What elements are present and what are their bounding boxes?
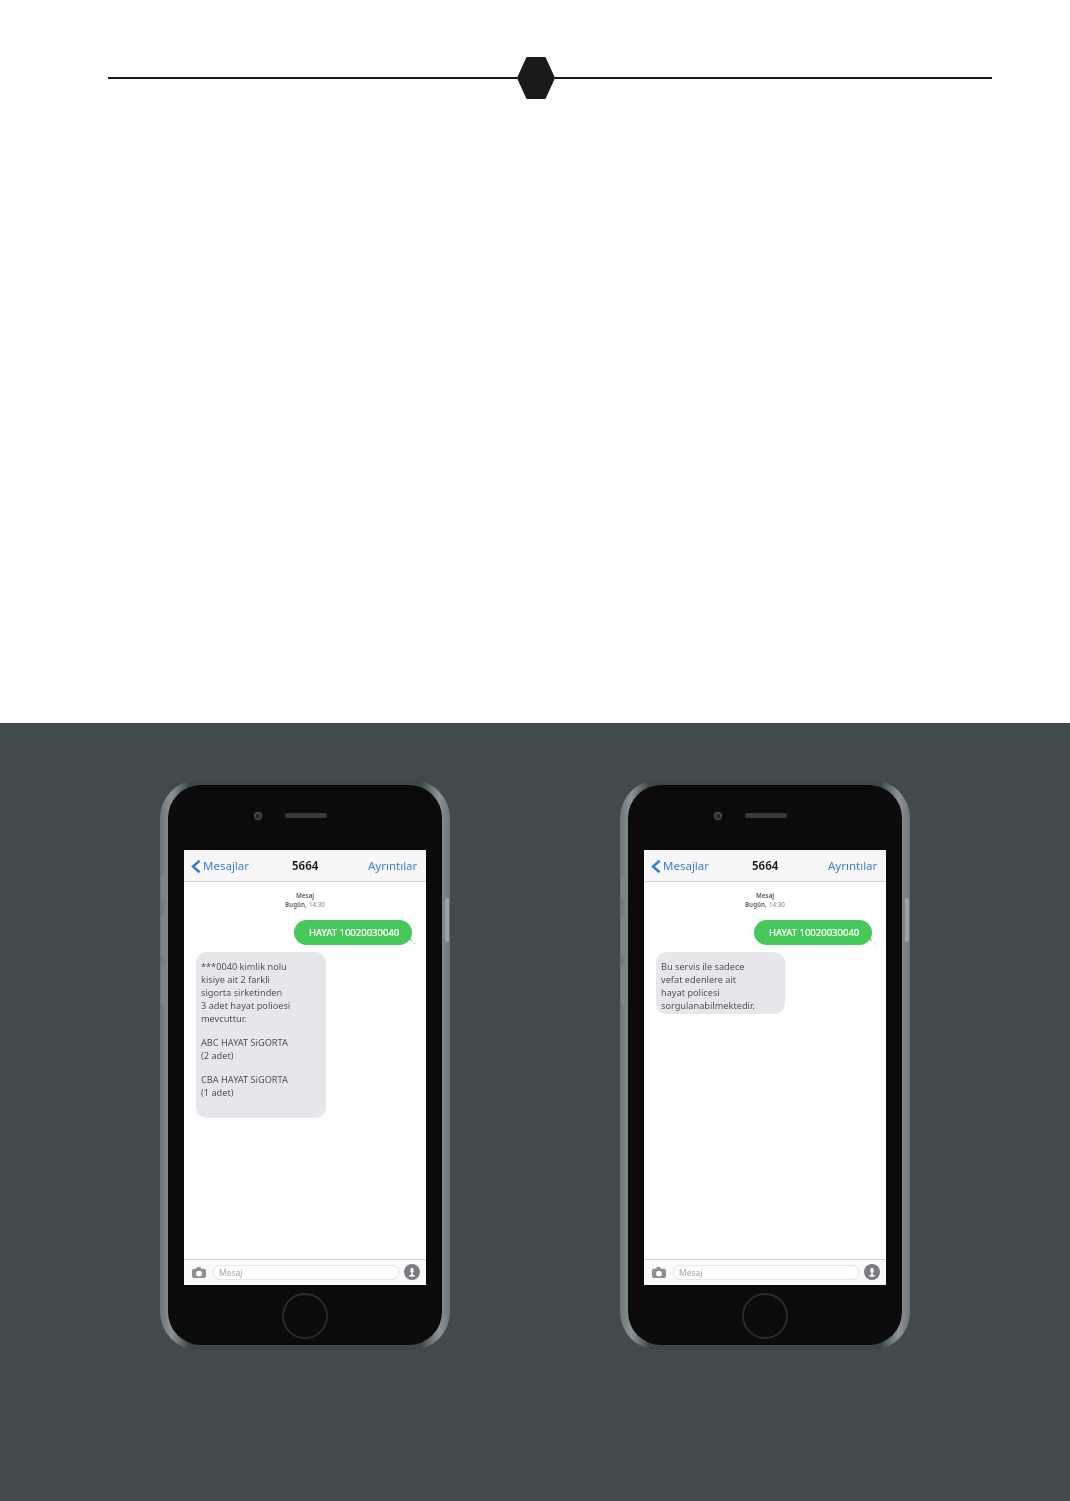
- staticText: Mesaj: [679, 1267, 703, 1279]
- staticText: Bugün,: [285, 900, 309, 908]
- staticText: mevcuttur.: [201, 1012, 247, 1025]
- button[interactable]: Ayrıntılar: [826, 854, 880, 878]
- staticText: 3 adet hayat polioesi: [201, 999, 291, 1012]
- button[interactable]: Record audio: [404, 1264, 420, 1280]
- staticText: hayat policesi: [661, 986, 720, 999]
- staticText: CBA HAYAT SiGORTA: [201, 1073, 288, 1086]
- button[interactable]: HAYAT 10020030040: [294, 920, 418, 945]
- staticText: Mesaj: [296, 891, 315, 899]
- staticText: kisiye ait 2 farkli: [201, 973, 270, 986]
- staticText: Mesajlar: [663, 858, 710, 874]
- staticText: HAYAT 10020030040: [769, 926, 860, 939]
- staticText: Mesajlar: [203, 858, 250, 874]
- button[interactable]: Bu servis ile sadece: [651, 952, 785, 1014]
- staticText: Ayrıntılar: [368, 858, 418, 874]
- staticText: Mesaj: [756, 891, 775, 899]
- button[interactable]: HAYAT 10020030040: [754, 920, 878, 945]
- staticText: vefat edenlere ait: [661, 973, 737, 986]
- button[interactable]: Mesajlar: [190, 854, 252, 878]
- button[interactable]: Mesaj: [673, 1265, 859, 1280]
- button[interactable]: Mesajlar: [650, 854, 712, 878]
- staticText: Bugün,: [745, 900, 769, 908]
- staticText: ***0040 kimlik nolu: [201, 960, 287, 973]
- staticText: sigorta sirketinden: [201, 986, 283, 999]
- button[interactable]: Camera: [650, 1263, 668, 1281]
- staticText: Bu servis ile sadece: [661, 960, 745, 973]
- staticText: 5664: [292, 858, 319, 874]
- button[interactable]: ***0040 kimlik nolu: [191, 952, 326, 1118]
- staticText: (1 adet): [201, 1086, 234, 1099]
- button[interactable]: Ayrıntılar: [366, 854, 420, 878]
- staticText: 5664: [752, 858, 779, 874]
- staticText: Mesaj: [219, 1267, 243, 1279]
- staticText: ABC HAYAT SiGORTA: [201, 1036, 288, 1049]
- staticText: Ayrıntılar: [828, 858, 878, 874]
- staticText: HAYAT 10020030040: [309, 926, 400, 939]
- staticText: 14:30: [309, 900, 325, 908]
- button[interactable]: Record audio: [864, 1264, 880, 1280]
- button[interactable]: Mesaj: [213, 1265, 399, 1280]
- staticText: 14:30: [769, 900, 785, 908]
- staticText: sorgulanabilmektedir.: [661, 999, 755, 1012]
- staticText: (2 adet): [201, 1049, 234, 1062]
- button[interactable]: Camera: [190, 1263, 208, 1281]
